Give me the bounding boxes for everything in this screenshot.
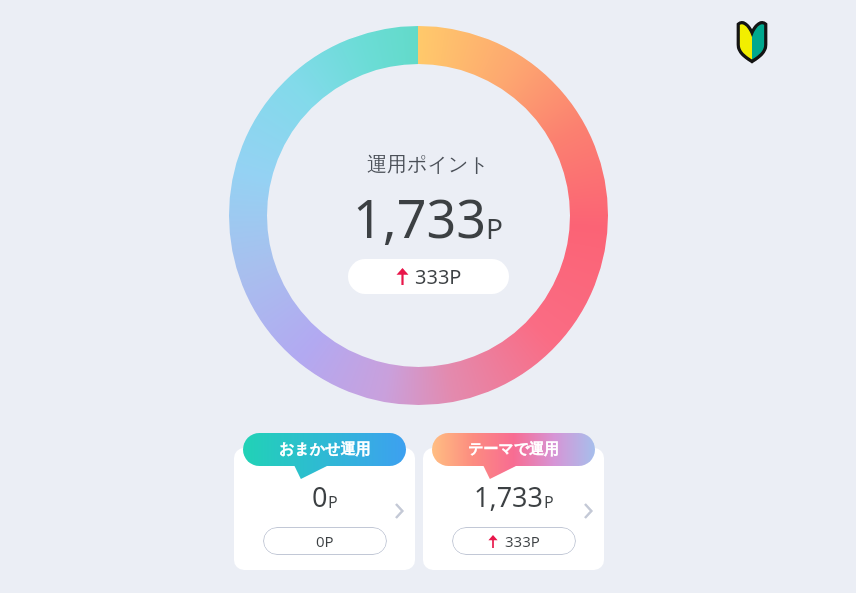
staticText: 運用ポイント: [367, 152, 489, 177]
staticText: 333P: [415, 263, 462, 290]
staticText: 1,733: [474, 478, 544, 515]
staticText: P: [544, 491, 554, 513]
button[interactable]: 333P: [452, 527, 576, 555]
staticText: テーマで運用: [468, 440, 560, 459]
staticText: おまかせ運用: [279, 440, 371, 459]
button[interactable]: Beginner mark: [736, 19, 768, 62]
staticText: 333P: [505, 531, 540, 551]
staticText: 1,733: [353, 182, 486, 253]
staticText: 0P: [316, 531, 334, 551]
button[interactable]: 0P: [263, 527, 387, 555]
staticText: 0: [312, 478, 328, 515]
button[interactable]: おまかせ運用: [234, 448, 415, 570]
button[interactable]: テーマで運用: [432, 433, 595, 466]
button[interactable]: テーマで運用: [423, 448, 604, 570]
button[interactable]: 333P: [348, 259, 509, 294]
staticText: P: [486, 209, 503, 247]
staticText: P: [328, 491, 338, 513]
button[interactable]: おまかせ運用: [243, 433, 406, 466]
